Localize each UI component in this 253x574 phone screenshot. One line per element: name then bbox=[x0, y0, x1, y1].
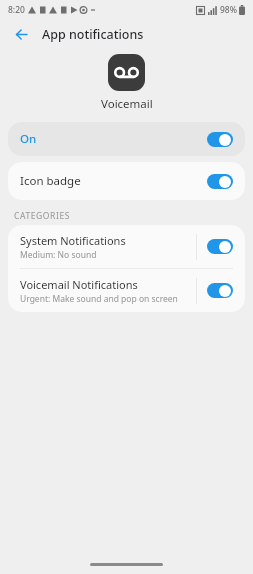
button[interactable]: Toggle bbox=[207, 283, 233, 298]
staticText: 98% bbox=[220, 4, 237, 16]
button[interactable]: Icon badge bbox=[8, 162, 245, 200]
staticText: Voicemail Notifications bbox=[20, 277, 138, 292]
button[interactable]: Toggle bbox=[207, 174, 233, 189]
staticText: On bbox=[20, 131, 37, 147]
staticText: 8:20 bbox=[8, 4, 25, 16]
button[interactable]: Back bbox=[10, 23, 32, 45]
staticText: Icon badge bbox=[20, 173, 81, 189]
button[interactable]: Toggle bbox=[207, 132, 233, 147]
button[interactable]: Toggle bbox=[207, 239, 233, 254]
staticText: App notifications bbox=[42, 26, 144, 43]
button[interactable]: On bbox=[8, 122, 245, 156]
staticText: System Notifications bbox=[20, 233, 126, 248]
button[interactable]: Voicemail Notifications bbox=[8, 269, 245, 312]
staticText: Urgent: Make sound and pop on screen bbox=[20, 293, 178, 305]
staticText: Medium: No sound bbox=[20, 249, 97, 261]
staticText: Voicemail bbox=[101, 96, 153, 112]
button[interactable]: System Notifications bbox=[8, 225, 245, 268]
staticText: CATEGORIES bbox=[14, 210, 71, 222]
